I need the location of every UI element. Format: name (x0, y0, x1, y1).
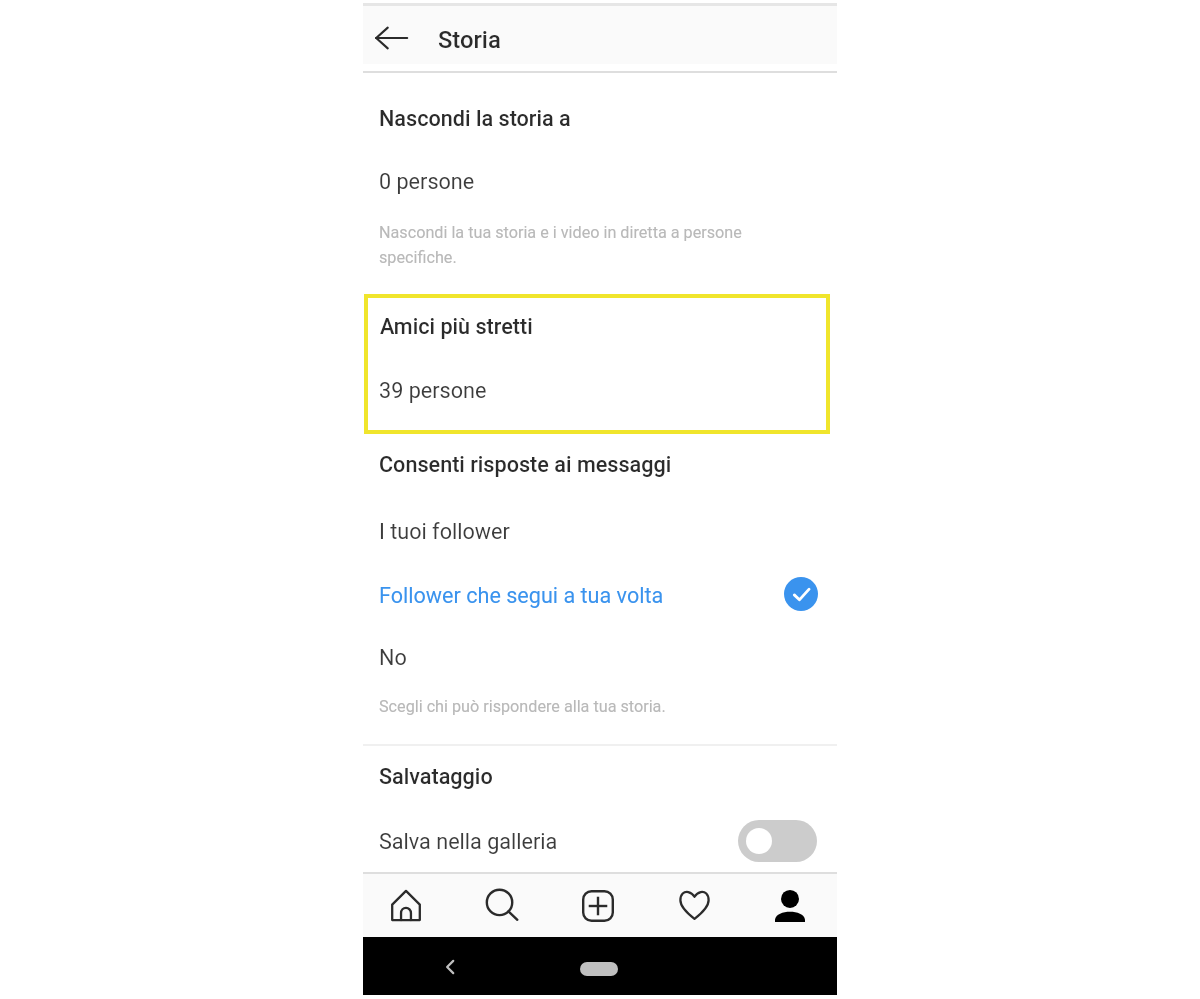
button[interactable]: No (363, 638, 837, 678)
staticText: Salva nella galleria (379, 829, 558, 854)
button[interactable]: I tuoi follower (363, 512, 837, 552)
button[interactable]: Search (455, 874, 549, 937)
staticText: No (379, 645, 407, 670)
button[interactable]: Amici più stretti (368, 298, 826, 430)
staticText: Consenti risposte ai messaggi (379, 452, 672, 477)
button[interactable]: Back (363, 5, 419, 66)
button[interactable]: Activity (647, 874, 741, 937)
staticText: Nascondi la tua storia e i video in dire… (379, 223, 742, 267)
staticText: Salvataggio (379, 764, 493, 789)
staticText: 39 persone (379, 378, 487, 403)
button[interactable]: Home (580, 962, 618, 976)
staticText: Amici più stretti (380, 314, 533, 339)
staticText: Nascondi la storia a (379, 106, 571, 131)
staticText: Follower che segui a tua volta (379, 583, 664, 608)
button[interactable]: Follower che segui a tua volta (363, 570, 837, 614)
button[interactable]: 0 persone (363, 162, 837, 202)
staticText: Scegli chi può rispondere alla tua stori… (379, 697, 666, 716)
staticText: 0 persone (379, 169, 475, 194)
staticText: I tuoi follower (379, 519, 510, 544)
button[interactable]: Salva nella galleria (363, 812, 837, 862)
button[interactable]: Home (359, 874, 453, 937)
button[interactable]: Back (430, 947, 470, 987)
button[interactable]: Create new post (551, 874, 645, 937)
staticText: Storia (438, 26, 501, 54)
button[interactable]: Profile (742, 874, 836, 937)
